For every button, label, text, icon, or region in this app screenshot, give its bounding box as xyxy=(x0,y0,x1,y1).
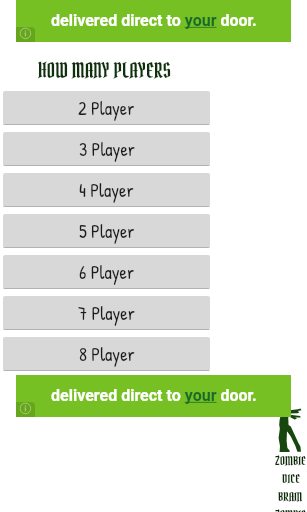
staticText: ZOMBIE xyxy=(275,506,307,512)
staticText: delivered direct to your door. xyxy=(51,11,257,30)
button[interactable]: Ad choices info xyxy=(16,27,35,42)
staticText: 3 Player xyxy=(79,137,135,162)
staticText: 6 Player xyxy=(79,260,135,285)
button[interactable]: 6 Player xyxy=(3,255,210,289)
staticText: 4 Player xyxy=(79,178,134,203)
button[interactable]: 7 Player xyxy=(3,296,210,330)
staticText: 2 Player xyxy=(78,96,135,121)
button[interactable]: 5 Player xyxy=(3,214,210,248)
button[interactable]: 4 Player xyxy=(3,173,210,207)
staticText: 5 Player xyxy=(79,219,135,244)
staticText: 8 Player xyxy=(79,342,135,367)
button[interactable]: Ad choices info xyxy=(16,402,35,417)
staticText: 7 Player xyxy=(78,301,135,326)
staticText: ZOMBIE xyxy=(275,452,307,468)
staticText: delivered direct to your door. xyxy=(51,386,257,405)
button[interactable]: 8 Player xyxy=(3,337,210,371)
staticText: BRAIN xyxy=(278,488,303,504)
button[interactable]: 3 Player xyxy=(3,132,210,166)
staticText: HOW MANY PLAYERS xyxy=(38,58,172,84)
button[interactable]: 2 Player xyxy=(3,91,210,125)
button[interactable]: delivered direct to your door. xyxy=(16,0,291,42)
button[interactable]: delivered direct to your door. xyxy=(16,375,291,417)
staticText: DICE xyxy=(282,470,301,486)
